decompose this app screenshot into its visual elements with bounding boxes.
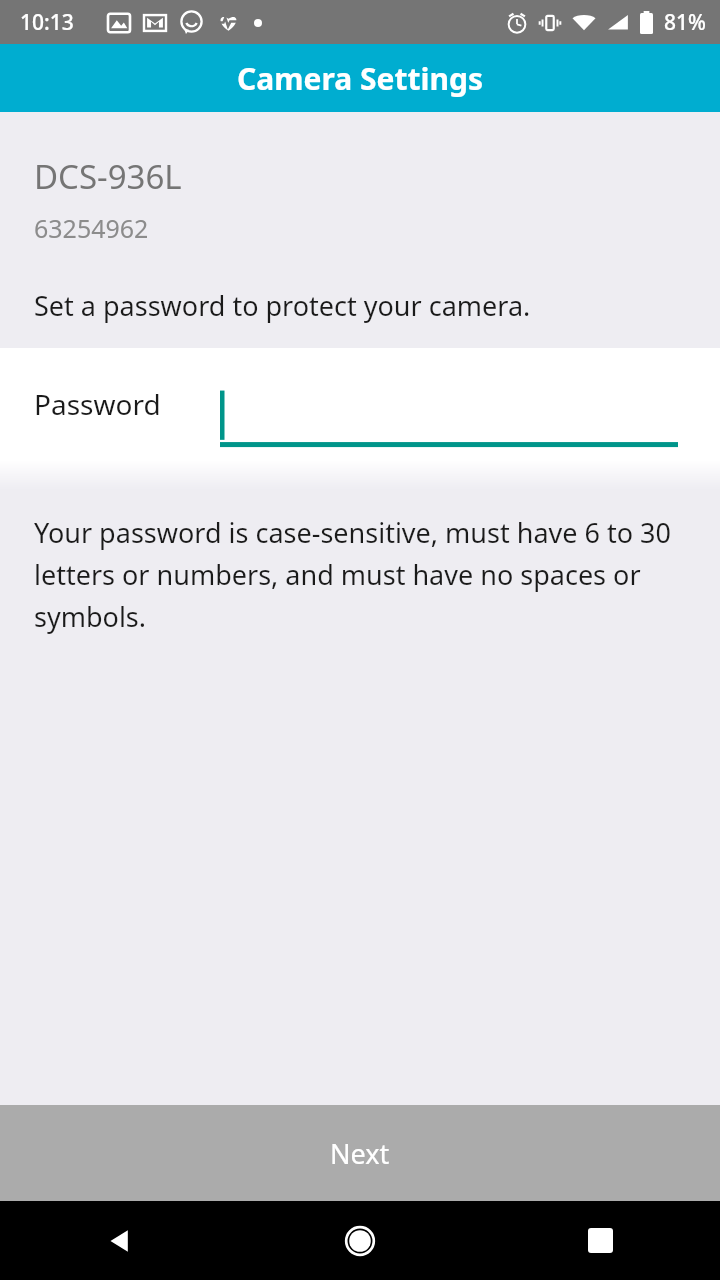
staticText: DCS-936L [34,154,182,199]
staticText: Your password is case-sensitive, must ha… [34,514,680,635]
staticText: 63254962 [34,211,149,245]
staticText: Next [330,1135,390,1172]
staticText: 81% [664,8,706,37]
button[interactable]: Back [0,1201,240,1280]
button[interactable]: Password [0,348,720,460]
button[interactable]: Recent apps [480,1201,720,1280]
staticText: 10:13 [20,8,74,37]
staticText: Set a password to protect your camera. [34,287,531,324]
staticText: Camera Settings [237,58,483,99]
staticText: Password [34,385,161,423]
button[interactable]: Home [240,1201,480,1280]
button[interactable]: Next [0,1105,720,1201]
